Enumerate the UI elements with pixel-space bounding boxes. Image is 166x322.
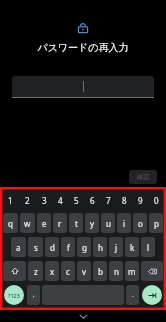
button[interactable]: Shift <box>3 261 26 281</box>
button[interactable]: e <box>37 213 51 233</box>
staticText: d <box>50 242 55 253</box>
staticText: y <box>90 218 95 229</box>
staticText: m <box>128 266 136 277</box>
staticText: f <box>67 242 70 253</box>
staticText: i <box>123 218 126 229</box>
staticText: w <box>24 218 31 229</box>
staticText: o <box>138 218 143 229</box>
button[interactable]: 7 <box>100 190 116 211</box>
button[interactable]: x <box>45 261 59 281</box>
button[interactable]: t <box>69 213 83 233</box>
staticText: 2 <box>25 195 30 206</box>
button[interactable]: 4 <box>52 190 68 211</box>
button[interactable]: 8 <box>116 190 132 211</box>
other: Lock <box>77 22 89 34</box>
button[interactable]: 0 <box>148 190 164 211</box>
button[interactable]: . <box>126 285 139 305</box>
staticText: s <box>34 242 38 253</box>
staticText: 8 <box>122 195 127 206</box>
staticText: パスワードの再入力 <box>37 41 129 54</box>
button[interactable]: m <box>125 261 139 281</box>
staticText: p <box>154 218 159 229</box>
button[interactable]: , <box>27 285 40 305</box>
button[interactable]: n <box>109 261 123 281</box>
button[interactable]: c <box>61 261 75 281</box>
staticText: j <box>115 242 118 253</box>
button[interactable]: s <box>28 237 43 257</box>
staticText: v <box>82 266 87 277</box>
button[interactable]: u <box>101 213 115 233</box>
button[interactable]: 9 <box>132 190 148 211</box>
staticText: 1 <box>8 195 13 206</box>
staticText: b <box>98 266 103 277</box>
button[interactable]: Enter <box>142 285 162 305</box>
button[interactable]: p <box>149 213 163 233</box>
staticText: 確認 <box>137 173 149 181</box>
staticText: , <box>33 291 35 299</box>
button[interactable]: b <box>93 261 107 281</box>
staticText: ?123 <box>8 292 20 299</box>
staticText: 0 <box>154 195 159 206</box>
button[interactable]: f <box>61 237 75 257</box>
button[interactable]: 2 <box>19 190 36 211</box>
button[interactable]: v <box>77 261 91 281</box>
staticText: 4 <box>58 195 63 206</box>
button[interactable]: 1 <box>2 190 19 211</box>
button[interactable]: 3 <box>36 190 52 211</box>
staticText: z <box>34 266 38 277</box>
staticText: q <box>8 218 13 229</box>
staticText: g <box>82 242 87 253</box>
button[interactable]: h <box>93 237 107 257</box>
button[interactable]: r <box>53 213 67 233</box>
staticText: 7 <box>106 195 111 206</box>
staticText: u <box>106 218 111 229</box>
button[interactable]: Symbols <box>4 285 24 305</box>
staticText: l <box>147 242 150 253</box>
button[interactable]: y <box>85 213 99 233</box>
button[interactable]: Hide keyboard <box>77 310 89 322</box>
button[interactable]: Backspace <box>141 261 163 281</box>
button[interactable]: d <box>45 237 59 257</box>
button[interactable]: i <box>117 213 131 233</box>
button[interactable]: 5 <box>68 190 84 211</box>
staticText: 6 <box>90 195 95 206</box>
button[interactable]: q <box>3 213 18 233</box>
button[interactable]: k <box>125 237 139 257</box>
button[interactable]: 6 <box>84 190 100 211</box>
staticText: 5 <box>74 195 79 206</box>
button[interactable]: z <box>28 261 43 281</box>
staticText: r <box>58 218 62 229</box>
button[interactable]: 確認 <box>129 170 157 184</box>
staticText: x <box>50 266 55 277</box>
button[interactable]: l <box>141 237 155 257</box>
staticText: n <box>114 266 119 277</box>
button[interactable]: o <box>133 213 147 233</box>
staticText: . <box>132 291 134 299</box>
staticText: 3 <box>42 195 47 206</box>
staticText: t <box>75 218 78 229</box>
staticText: h <box>98 242 103 253</box>
staticText: e <box>42 218 47 229</box>
staticText: 9 <box>138 195 143 206</box>
button[interactable]: a <box>11 237 26 257</box>
staticText: a <box>16 242 21 253</box>
button[interactable]: j <box>109 237 123 257</box>
staticText: k <box>130 242 135 253</box>
button[interactable]: w <box>20 213 35 233</box>
button[interactable]: g <box>77 237 91 257</box>
button[interactable] <box>12 76 154 97</box>
staticText: c <box>66 266 70 277</box>
